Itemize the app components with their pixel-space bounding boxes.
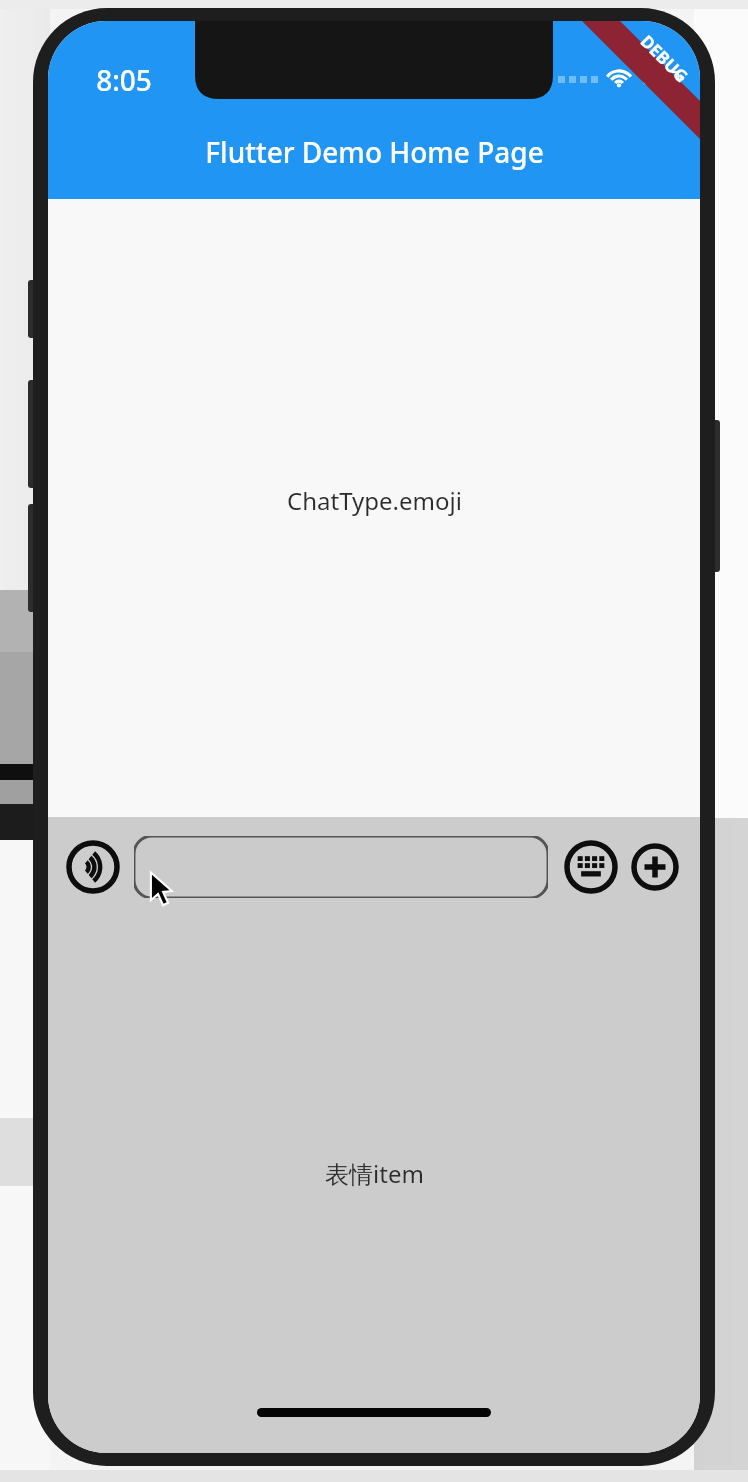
- button[interactable]: More options: [626, 838, 684, 896]
- staticText: DEBUG: [635, 29, 693, 87]
- button[interactable]: Voice input: [64, 838, 122, 896]
- staticText: ChatType.emoji: [287, 484, 462, 517]
- button[interactable]: [134, 836, 548, 898]
- staticText: 8:05: [96, 61, 152, 99]
- staticText: Flutter Demo Home Page: [205, 133, 544, 171]
- staticText: 表情item: [325, 1157, 424, 1190]
- button[interactable]: Keyboard: [562, 838, 620, 896]
